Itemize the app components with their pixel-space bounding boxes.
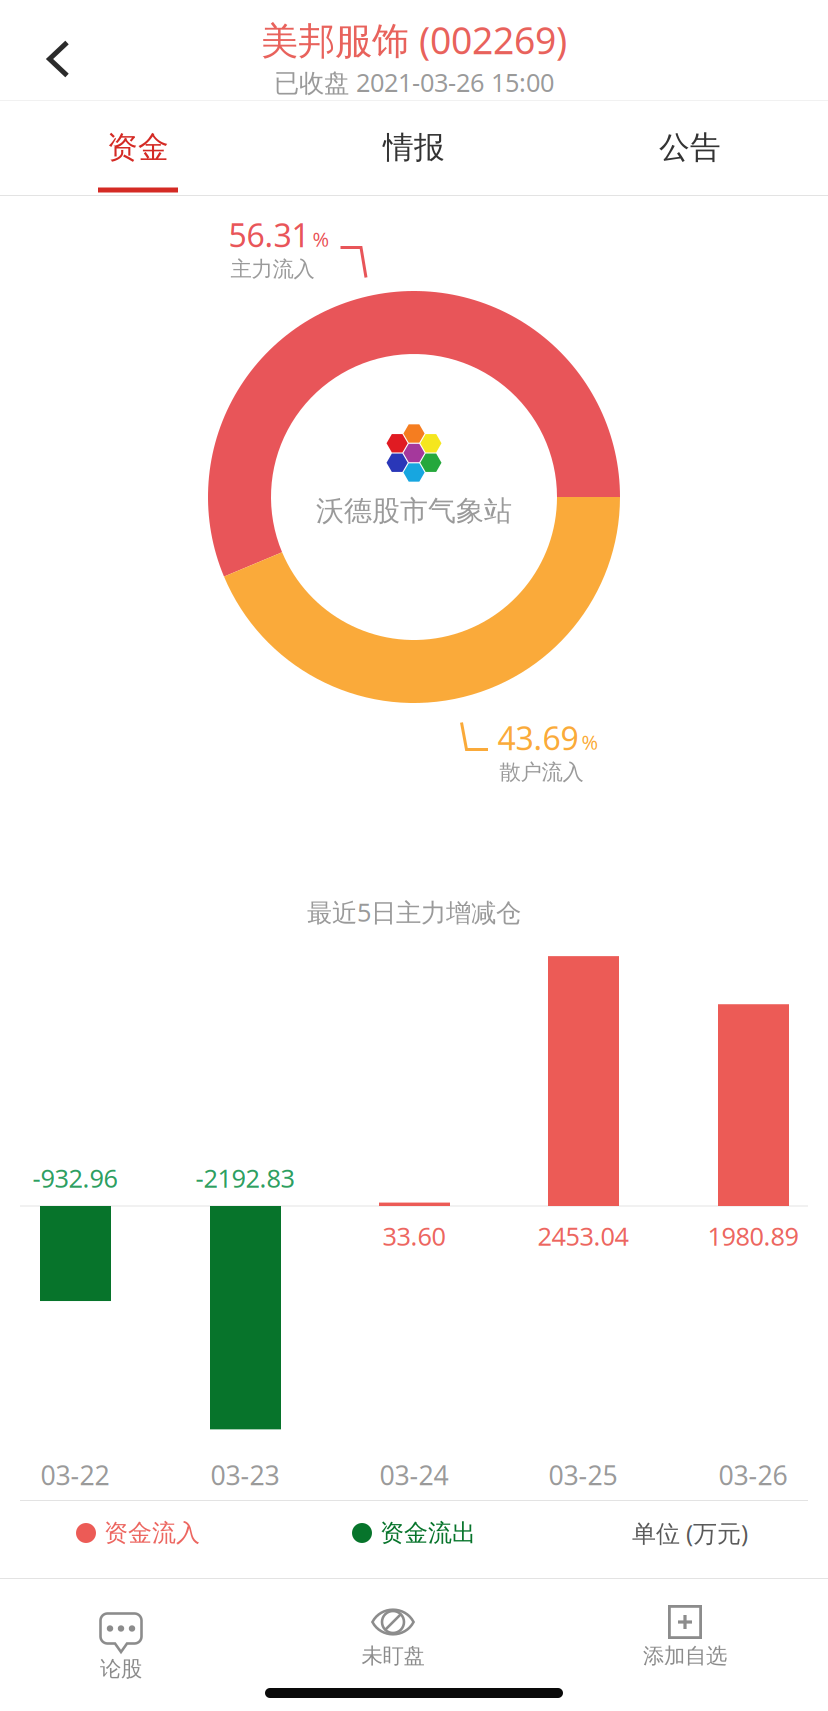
button[interactable]: 资金 <box>0 100 276 195</box>
button[interactable]: Back <box>10 11 106 107</box>
button[interactable]: 情报 <box>276 100 552 195</box>
staticText: 03-22 <box>40 1457 109 1493</box>
staticText: 主力流入 <box>230 256 314 282</box>
staticText: 2453.04 <box>537 1219 628 1253</box>
staticText: % <box>312 226 329 252</box>
staticText: 03-24 <box>379 1457 448 1493</box>
button[interactable]: 论股 <box>21 1581 221 1691</box>
staticText: 03-26 <box>718 1457 787 1493</box>
staticText: 43.69 <box>497 717 578 759</box>
staticText: 最近5日主力增减仓 <box>307 895 521 929</box>
staticText: 33.60 <box>382 1219 445 1253</box>
button[interactable]: 公告 <box>552 100 828 195</box>
staticText: -932.96 <box>32 1161 117 1195</box>
staticText: 情报 <box>383 129 445 166</box>
staticText: 添加自选 <box>643 1643 727 1669</box>
staticText: 56.31 <box>228 214 309 256</box>
staticText: 单位 (万元) <box>632 1517 748 1549</box>
button[interactable]: 未盯盘 <box>293 1581 493 1691</box>
staticText: 资金流出 <box>380 1518 476 1548</box>
staticText: 03-23 <box>210 1457 279 1493</box>
staticText: % <box>581 729 598 755</box>
staticText: 未盯盘 <box>361 1643 424 1669</box>
staticText: 公告 <box>659 129 721 166</box>
staticText: 资金 <box>107 129 169 166</box>
staticText: 沃德股市气象站 <box>316 494 512 528</box>
staticText: 美邦服饰 (002269) <box>261 15 567 64</box>
staticText: 已收盘 2021-03-26 15:00 <box>274 65 554 99</box>
staticText: 散户流入 <box>499 759 583 785</box>
staticText: 论股 <box>100 1656 142 1682</box>
staticText: -2192.83 <box>195 1161 294 1195</box>
button[interactable]: 添加自选 <box>585 1581 785 1691</box>
staticText: 03-25 <box>548 1457 617 1493</box>
staticText: 1980.89 <box>707 1219 798 1253</box>
staticText: 资金流入 <box>104 1518 200 1548</box>
